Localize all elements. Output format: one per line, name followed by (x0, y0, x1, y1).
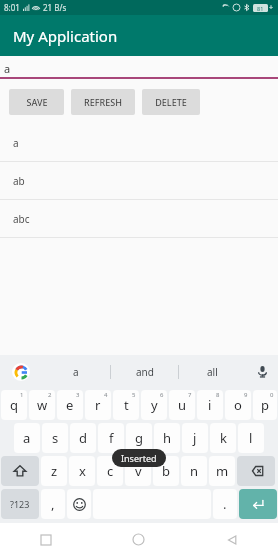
staticText: e (66, 396, 74, 414)
staticText: j (193, 429, 197, 447)
button[interactable]: k (210, 423, 236, 453)
button[interactable]: u (169, 390, 195, 420)
button[interactable]: a (14, 423, 40, 453)
staticText: 9 (244, 391, 248, 399)
button[interactable]: q (1, 390, 27, 420)
button[interactable]: l (238, 423, 264, 453)
button[interactable]: e (57, 390, 83, 420)
staticText: d (79, 429, 87, 447)
staticText: t (124, 396, 129, 414)
button[interactable]: s (42, 423, 68, 453)
button[interactable]: DELETE (142, 89, 200, 115)
button[interactable]: Voice input (246, 355, 278, 388)
staticText: 0 (270, 391, 274, 399)
staticText: SAVE (26, 96, 48, 108)
button[interactable]: g (126, 423, 152, 453)
staticText: a (23, 429, 31, 447)
button[interactable]: h (154, 423, 180, 453)
staticText: z (51, 462, 58, 480)
button[interactable]: m (209, 456, 235, 486)
button[interactable]: a (42, 355, 110, 388)
button[interactable]: x (69, 456, 95, 486)
staticText: 21 B/s (43, 2, 67, 13)
button[interactable]: j (182, 423, 208, 453)
button[interactable]: o (225, 390, 251, 420)
staticText: y (151, 396, 158, 414)
staticText: 6 (160, 391, 164, 399)
button[interactable]: all (179, 355, 246, 388)
staticText: . (223, 495, 227, 513)
staticText: x (79, 462, 86, 480)
button[interactable]: z (41, 456, 67, 486)
button[interactable]: c (97, 456, 123, 486)
staticText: Inserted (121, 452, 157, 464)
button[interactable]: ab (0, 162, 278, 199)
staticText: b (162, 462, 170, 480)
staticText: r (95, 396, 101, 414)
staticText: s (52, 429, 59, 447)
button[interactable]: i (197, 390, 223, 420)
staticText: g (135, 429, 143, 447)
staticText: f (109, 429, 114, 447)
staticText: m (216, 462, 229, 480)
button[interactable]: d (70, 423, 96, 453)
staticText: DELETE (155, 96, 187, 108)
button[interactable]: REFRESH (71, 89, 135, 115)
button[interactable]: w (29, 390, 55, 420)
staticText: all (207, 365, 218, 379)
staticText: p (261, 396, 269, 414)
button[interactable]: Shift (1, 456, 39, 486)
staticText: a (13, 136, 19, 150)
staticText: l (249, 429, 253, 447)
staticText: c (107, 462, 114, 480)
button[interactable]: Home (92, 523, 185, 556)
button[interactable]: Backspace (237, 456, 275, 486)
staticText: + (269, 3, 274, 13)
button[interactable]: and (111, 355, 178, 388)
button[interactable]: Recents (0, 523, 92, 556)
staticText: u (178, 396, 187, 414)
staticText: and (136, 365, 154, 379)
button[interactable]: , (41, 489, 65, 519)
staticText: q (10, 396, 18, 414)
staticText: a (4, 61, 11, 76)
staticText: My Application (13, 26, 118, 46)
button[interactable]: abc (0, 200, 278, 237)
button[interactable]: f (98, 423, 124, 453)
staticText: i (208, 396, 212, 414)
button[interactable]: SAVE (9, 89, 64, 115)
button[interactable]: . (213, 489, 237, 519)
staticText: k (220, 429, 227, 447)
staticText: 2 (48, 391, 52, 399)
staticText: 3 (76, 391, 80, 399)
button[interactable]: y (141, 390, 167, 420)
staticText: 1 (20, 391, 24, 399)
staticText: n (190, 462, 199, 480)
staticText: 4 (104, 391, 108, 399)
staticText: 8:01 (4, 2, 20, 13)
staticText: abc (13, 212, 30, 226)
button[interactable]: Google (0, 355, 42, 388)
staticText: 5 (132, 391, 136, 399)
staticText: w (37, 396, 48, 414)
staticText: v (135, 462, 142, 480)
staticText: REFRESH (84, 96, 122, 108)
staticText: 8 (216, 391, 220, 399)
button[interactable]: a (0, 124, 278, 161)
button[interactable]: Emoji (67, 489, 91, 519)
button[interactable]: v (125, 456, 151, 486)
button[interactable]: b (153, 456, 179, 486)
button[interactable]: r (85, 390, 111, 420)
button[interactable]: n (181, 456, 207, 486)
button[interactable]: Enter (239, 489, 277, 519)
staticText: 7 (188, 391, 192, 399)
button[interactable]: p (253, 390, 277, 420)
staticText: h (163, 429, 172, 447)
staticText: a (73, 365, 79, 379)
staticText: ?123 (10, 498, 30, 510)
button[interactable]: Back (185, 523, 278, 556)
staticText: o (234, 396, 242, 414)
button[interactable]: ?123 (1, 489, 39, 519)
button[interactable]: t (113, 390, 139, 420)
